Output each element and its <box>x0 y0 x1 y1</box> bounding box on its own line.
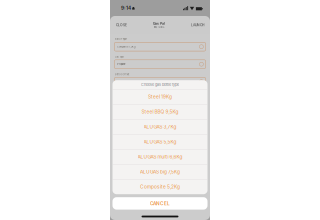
button[interactable]: 0 <box>114 77 205 86</box>
staticText: BBQ GRILL <box>153 26 164 28</box>
staticText: LAUNCH <box>191 23 204 27</box>
staticText: ALUGAS 3,7Kg <box>143 124 176 130</box>
staticText: Propane <box>117 63 125 66</box>
button[interactable]: CLOSE <box>114 20 128 29</box>
staticText: Gas Type <box>114 55 123 58</box>
button[interactable]: Propane <box>114 60 205 69</box>
staticText: CLOSE <box>116 23 127 27</box>
staticText: 9:14 <box>121 5 131 11</box>
staticText: Composite 1,2Kg <box>117 45 135 48</box>
staticText: Composite 5,2Kg <box>140 184 180 190</box>
button[interactable]: ALUGAS 5,5Kg <box>112 134 207 149</box>
staticText: Gas Pal <box>153 21 165 25</box>
staticText: ALUGAS big 7,5Kg <box>140 169 180 175</box>
button[interactable]: Steel 19Kg <box>112 89 207 104</box>
button[interactable]: CANCEL <box>112 197 207 210</box>
button[interactable]: ALUGAS 3,7Kg <box>112 119 207 134</box>
staticText: CANCEL <box>150 200 170 206</box>
staticText: Choose gas bottle type <box>141 82 179 87</box>
button[interactable]: ALUGAS big 7,5Kg <box>112 164 207 179</box>
staticText: Bottle Type <box>114 38 126 41</box>
button[interactable]: ALUGAS multi 6,6Kg <box>112 149 207 164</box>
button[interactable]: Steel BBQ 9,5Kg <box>112 104 207 119</box>
staticText: Steel BBQ 9,5Kg <box>141 109 178 115</box>
staticText: ALUGAS multi 6,6Kg <box>137 154 182 160</box>
button[interactable]: Composite 1,2Kg <box>114 42 205 51</box>
staticText: ALUGAS 5,5Kg <box>143 139 176 145</box>
staticText: 0 <box>117 80 119 83</box>
button[interactable]: LAUNCH <box>189 20 205 29</box>
button[interactable]: Composite 5,2Kg <box>112 179 207 194</box>
staticText: Steel 19Kg <box>148 94 172 100</box>
staticText: Bottle Offset <box>114 73 129 76</box>
